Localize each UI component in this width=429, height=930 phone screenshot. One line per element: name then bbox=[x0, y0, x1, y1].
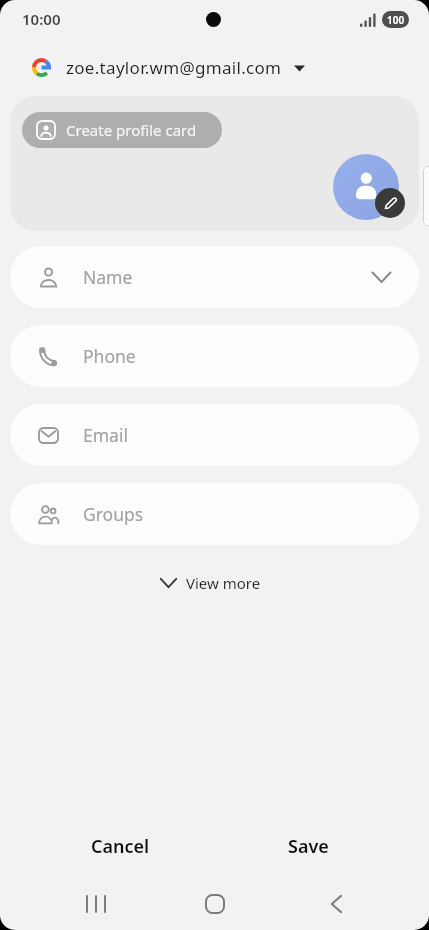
button[interactable] bbox=[193, 884, 237, 924]
staticText: zoe.taylor.wm@gmail.com bbox=[66, 56, 282, 79]
staticText: Create profile card bbox=[66, 120, 197, 140]
staticText: View more bbox=[186, 573, 261, 593]
button[interactable] bbox=[314, 884, 358, 924]
button[interactable]: Email bbox=[10, 404, 419, 466]
staticText: Email bbox=[83, 423, 128, 447]
staticText: 100 bbox=[387, 13, 405, 27]
button[interactable]: Groups bbox=[10, 483, 419, 545]
staticText: Save bbox=[288, 834, 329, 859]
button[interactable]: Save bbox=[214, 820, 402, 872]
button[interactable]: View more bbox=[152, 565, 269, 601]
staticText: Cancel bbox=[91, 834, 150, 859]
button[interactable]: zoe.taylor.wm@gmail.com bbox=[28, 52, 309, 83]
staticText: 10:00 bbox=[22, 9, 61, 29]
button[interactable]: Phone bbox=[10, 325, 419, 387]
button[interactable] bbox=[333, 154, 399, 220]
button[interactable] bbox=[74, 884, 118, 924]
button[interactable] bbox=[375, 188, 405, 218]
staticText: Groups bbox=[83, 502, 144, 526]
button[interactable]: Create profile card bbox=[22, 112, 222, 148]
staticText: Name bbox=[83, 265, 133, 289]
staticText: Phone bbox=[83, 344, 136, 368]
button[interactable]: Name bbox=[10, 246, 419, 308]
button[interactable]: Cancel bbox=[26, 820, 214, 872]
